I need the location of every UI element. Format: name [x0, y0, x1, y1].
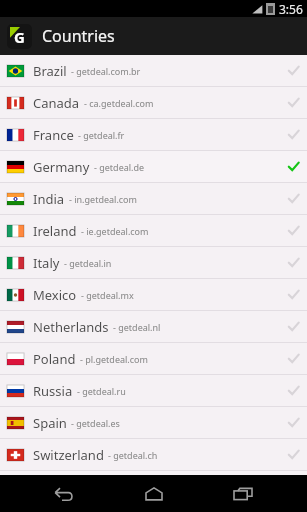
staticText: G	[14, 27, 25, 47]
staticText: - pl.getdeal.com	[80, 353, 287, 365]
staticText: 3:56	[279, 1, 303, 17]
staticText: Russia	[33, 382, 73, 400]
staticText: Germany	[33, 158, 90, 176]
button[interactable]: Brazil	[0, 55, 307, 87]
staticText: - getdeal.es	[71, 417, 287, 429]
staticText: India	[33, 190, 65, 208]
staticText: Canada	[33, 94, 80, 112]
button[interactable]: Home	[129, 475, 179, 512]
staticText: - getdeal.nl	[113, 321, 287, 333]
staticText: Brazil	[33, 62, 67, 80]
button[interactable]: Recent apps	[218, 475, 268, 512]
button[interactable]: Poland	[0, 343, 307, 375]
button[interactable]: Back	[39, 475, 89, 512]
staticText: - getdeal.ru	[77, 385, 287, 397]
staticText: - getdeal.com.br	[71, 65, 287, 77]
button[interactable]: France	[0, 119, 307, 151]
button[interactable]: Canada	[0, 87, 307, 119]
staticText: Italy	[33, 254, 60, 272]
staticText: - getdeal.de	[94, 161, 287, 173]
button[interactable]: Germany	[0, 151, 307, 183]
staticText: Mexico	[33, 286, 77, 304]
staticText: - getdeal.mx	[81, 289, 287, 301]
staticText: - getdeal.fr	[78, 129, 287, 141]
staticText: Poland	[33, 350, 76, 368]
staticText: France	[33, 126, 74, 144]
button[interactable]: Spain	[0, 407, 307, 439]
staticText: - getdeal.in	[64, 257, 287, 269]
staticText: Spain	[33, 414, 67, 432]
staticText: - ie.getdeal.com	[81, 225, 287, 237]
button[interactable]: Switzerland	[0, 439, 307, 471]
button[interactable]: App icon	[7, 24, 32, 49]
button[interactable]: India	[0, 183, 307, 215]
staticText: - getdeal.ch	[108, 449, 287, 461]
button[interactable]: Ireland	[0, 215, 307, 247]
staticText: Netherlands	[33, 318, 109, 336]
staticText: Ireland	[33, 222, 77, 240]
staticText: Countries	[42, 25, 115, 47]
button[interactable]: Netherlands	[0, 311, 307, 343]
button[interactable]: Mexico	[0, 279, 307, 311]
button[interactable]: Italy	[0, 247, 307, 279]
button[interactable]: Russia	[0, 375, 307, 407]
staticText: - in.getdeal.com	[69, 193, 287, 205]
staticText: Switzerland	[33, 446, 104, 464]
staticText: - ca.getdeal.com	[84, 97, 287, 109]
